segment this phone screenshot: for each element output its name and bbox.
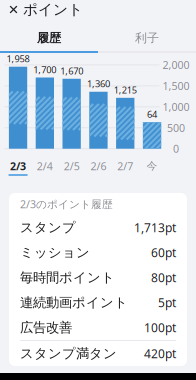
staticText: 今 [147, 159, 158, 172]
staticText: 1,360 [87, 77, 110, 90]
staticText: 毎時間ポイント [20, 269, 115, 286]
staticText: 1,958 [7, 52, 30, 65]
staticText: 2/3のポイント履歴 [20, 197, 113, 211]
staticText: 1,000 [162, 100, 189, 114]
staticText: 1,215 [114, 84, 137, 96]
staticText: 利子 [135, 31, 159, 45]
staticText: 2/7 [117, 159, 133, 173]
staticText: スタンプ満タン [20, 345, 117, 362]
staticText: 60pt [151, 244, 176, 260]
staticText: 1,670 [60, 65, 83, 77]
staticText: ミッション [20, 244, 90, 261]
button[interactable]: 利子 [98, 23, 196, 53]
staticText: 0 [173, 142, 179, 156]
staticText: ポイント [23, 0, 83, 18]
staticText: 2/6 [90, 159, 106, 173]
button[interactable]: Close [2, 0, 24, 19]
button[interactable]: 履歴 [0, 23, 98, 53]
staticText: 500 [167, 121, 185, 135]
staticText: 420pt [144, 345, 176, 361]
staticText: 100pt [144, 319, 176, 335]
staticText: 2/3 [10, 159, 26, 173]
staticText: 5pt [158, 294, 176, 310]
staticText: 2/4 [37, 159, 53, 173]
staticText: 80pt [151, 269, 176, 285]
staticText: 1,713pt [134, 219, 176, 235]
staticText: スタンプ [20, 219, 76, 236]
staticText: 64 [147, 108, 157, 120]
staticText: 1,500 [162, 79, 189, 93]
staticText: 履歴 [37, 31, 61, 45]
staticText: 2/5 [64, 159, 80, 173]
staticText: 広告改善 [20, 319, 72, 336]
staticText: 連続動画ポイント [20, 294, 128, 311]
staticText: 1,700 [33, 63, 56, 76]
staticText: 2,000 [162, 58, 189, 72]
